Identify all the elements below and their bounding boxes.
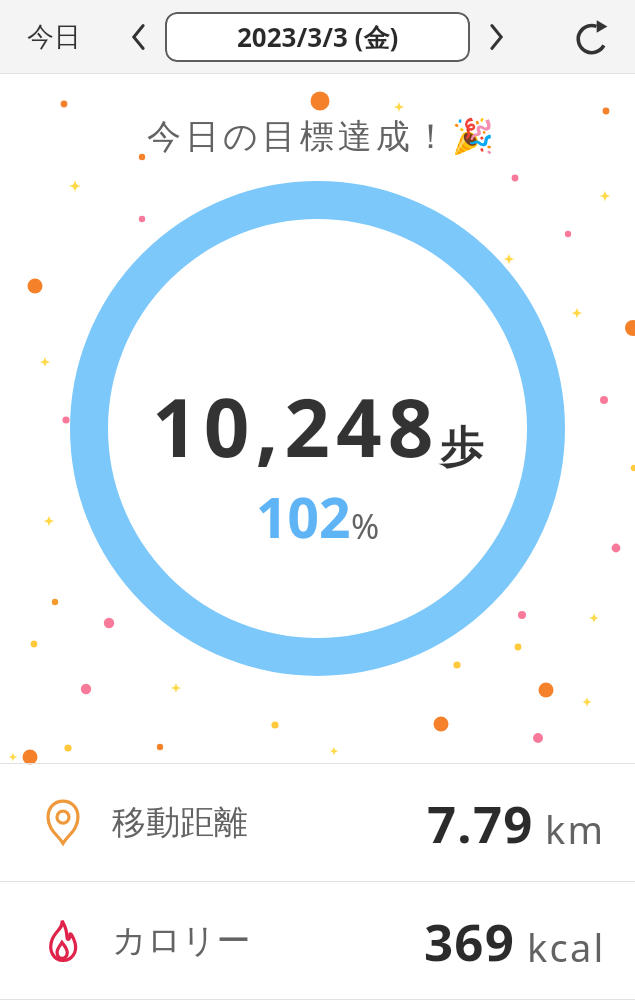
staticText: 歩 [440,421,483,475]
staticText: km [545,803,606,855]
button[interactable]: Next day [468,0,524,74]
staticText: 2023/3/3 (金) [237,19,399,55]
staticText: kcal [527,921,606,973]
staticText: 今日 [27,20,81,54]
staticText: 102 [256,479,351,554]
button[interactable]: 2023/3/3 (金) [165,12,470,62]
button[interactable]: Refresh [560,0,624,74]
button[interactable]: Previous day [111,0,167,74]
staticText: 今日の目標達成！🎉 [147,115,499,158]
staticText: 10,248 [152,371,440,480]
staticText: 7.79 [427,788,534,857]
button[interactable]: カロリー [0,882,635,999]
button[interactable]: 今日 [14,0,94,74]
staticText: 移動距離 [112,801,248,844]
staticText: % [351,503,380,549]
staticText: カロリー [112,919,251,962]
staticText: 369 [424,906,516,975]
button[interactable]: 移動距離 [0,764,635,881]
